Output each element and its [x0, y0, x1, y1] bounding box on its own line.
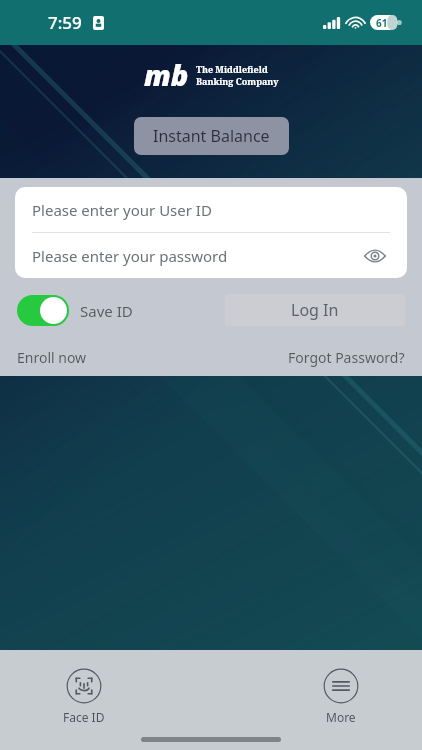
button[interactable]: Enroll now — [17, 348, 87, 367]
staticText: 7:59 — [48, 11, 82, 34]
button[interactable]: Forgot Password? — [288, 348, 405, 367]
button[interactable]: Please enter your User ID — [15, 187, 407, 232]
button[interactable]: Save ID — [17, 295, 133, 326]
staticText: Banking Company — [196, 75, 279, 87]
staticText: Forgot Password? — [288, 348, 405, 367]
staticText: The Middlefield — [196, 63, 268, 75]
staticText: Enroll now — [17, 348, 87, 367]
button[interactable]: Face ID — [57, 662, 111, 731]
staticText: Please enter your User ID — [32, 200, 212, 220]
staticText: 61 — [376, 16, 388, 30]
button[interactable]: Instant Balance — [134, 117, 289, 155]
button[interactable]: More — [317, 662, 365, 731]
staticText: More — [326, 709, 356, 725]
button[interactable]: Log In — [225, 294, 405, 326]
staticText: Instant Balance — [153, 125, 270, 147]
staticText: Please enter your password — [32, 246, 228, 266]
staticText: Log In — [291, 299, 339, 321]
button[interactable]: Please enter your password — [15, 233, 407, 278]
staticText: Save ID — [80, 301, 133, 321]
button[interactable]: Show password — [360, 241, 390, 271]
staticText: mb — [144, 55, 189, 94]
staticText: Face ID — [63, 709, 105, 725]
